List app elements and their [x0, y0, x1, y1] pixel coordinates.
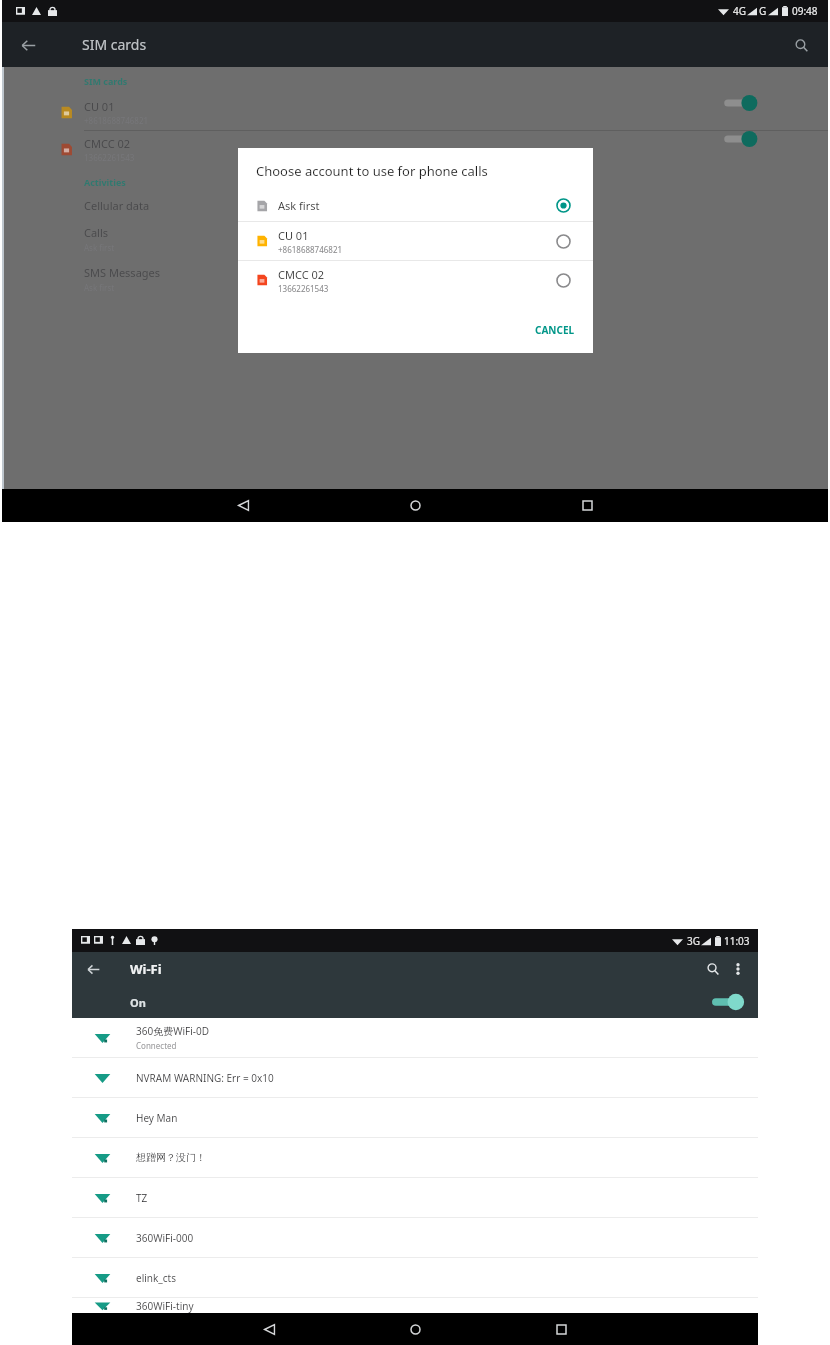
- staticText: Connected: [136, 1040, 177, 1051]
- button[interactable]: Search: [700, 956, 726, 982]
- button[interactable]: Home: [397, 489, 433, 522]
- staticText: TZ: [136, 1191, 148, 1205]
- button[interactable]: Toggle SIM: [720, 129, 762, 149]
- staticText: On: [130, 995, 146, 1010]
- button[interactable]: Back: [252, 1313, 286, 1345]
- staticText: CU 01: [84, 99, 115, 114]
- button[interactable]: Home: [398, 1313, 432, 1345]
- button[interactable]: CU 01: [238, 222, 593, 260]
- button[interactable]: 想蹭网？没门！: [72, 1138, 758, 1177]
- button[interactable]: 360WiFi-tiny: [72, 1298, 758, 1313]
- button[interactable]: elink_cts: [72, 1258, 758, 1297]
- staticText: Choose account to use for phone calls: [256, 162, 488, 180]
- button[interactable]: Wi-Fi on: [710, 993, 744, 1011]
- staticText: 4G: [733, 4, 746, 18]
- button[interactable]: CMCC 02: [4, 131, 828, 167]
- staticText: 09:48: [792, 4, 818, 18]
- button[interactable]: Back: [78, 954, 108, 984]
- button[interactable]: Toggle SIM: [720, 93, 762, 113]
- staticText: SMS Messages: [84, 265, 161, 280]
- staticText: elink_cts: [136, 1271, 176, 1285]
- staticText: Ask first: [278, 198, 320, 213]
- button[interactable]: TZ: [72, 1178, 758, 1217]
- staticText: Calls: [84, 225, 109, 240]
- staticText: 13662261543: [278, 283, 329, 294]
- staticText: CMCC 02: [84, 136, 131, 151]
- staticText: G: [759, 4, 767, 18]
- button[interactable]: Recents: [569, 489, 605, 522]
- button[interactable]: SMS Messages: [4, 265, 828, 293]
- button[interactable]: Search: [782, 26, 820, 64]
- staticText: Activities: [84, 176, 126, 188]
- button[interactable]: Ask first: [238, 190, 593, 221]
- staticText: SIM cards: [84, 75, 128, 87]
- button[interactable]: Cellular data: [4, 198, 828, 213]
- staticText: 360WiFi-000: [136, 1231, 194, 1245]
- button[interactable]: Recents: [544, 1313, 578, 1345]
- staticText: Wi-Fi: [130, 960, 162, 978]
- button[interactable]: Hey Man: [72, 1098, 758, 1137]
- button[interactable]: CANCEL: [517, 317, 593, 343]
- staticText: SIM cards: [82, 35, 147, 54]
- staticText: Hey Man: [136, 1111, 178, 1125]
- button[interactable]: 360WiFi-000: [72, 1218, 758, 1257]
- staticText: 想蹭网？没门！: [136, 1151, 206, 1164]
- staticText: 360免费WiFi-0D: [136, 1024, 210, 1038]
- staticText: CANCEL: [535, 323, 575, 337]
- staticText: CMCC 02: [278, 267, 325, 282]
- button[interactable]: CMCC 02: [238, 261, 593, 299]
- staticText: NVRAM WARNING: Err = 0x10: [136, 1071, 274, 1085]
- button[interactable]: Back: [225, 489, 261, 522]
- staticText: +8618688746821: [278, 244, 343, 255]
- staticText: Cellular data: [84, 198, 150, 213]
- staticText: 11:03: [724, 934, 750, 948]
- button[interactable]: Back: [8, 25, 48, 65]
- staticText: CU 01: [278, 228, 309, 243]
- button[interactable]: CU 01: [4, 94, 828, 130]
- staticText: 13662261543: [84, 152, 135, 163]
- staticText: 3G: [687, 934, 700, 948]
- staticText: 360WiFi-tiny: [136, 1299, 194, 1313]
- button[interactable]: More options: [726, 957, 750, 981]
- button[interactable]: Calls: [4, 225, 828, 253]
- button[interactable]: On: [72, 986, 758, 1018]
- button[interactable]: NVRAM WARNING: Err = 0x10: [72, 1058, 758, 1097]
- button[interactable]: 360免费WiFi-0D: [72, 1018, 758, 1057]
